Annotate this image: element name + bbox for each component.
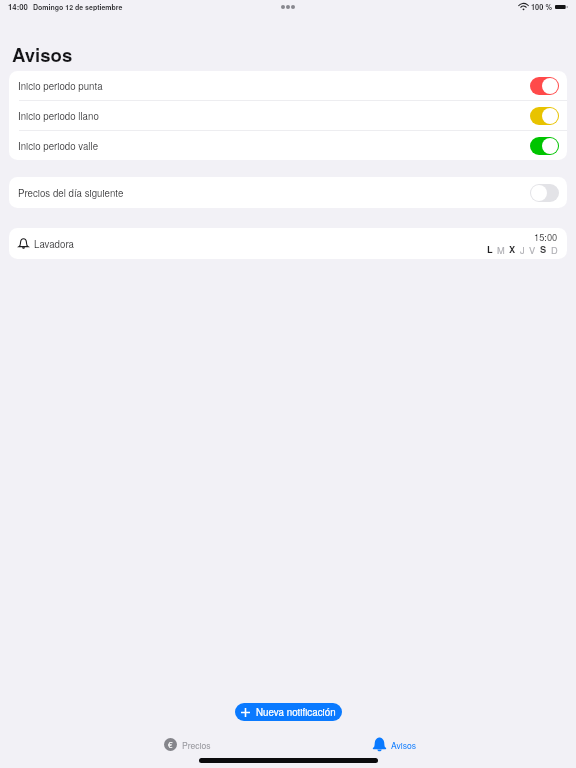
button[interactable]: Nueva notificación [235,703,342,721]
staticText: 15:00 [534,230,558,243]
staticText: L [487,243,493,256]
staticText: Inicio periodo punta [18,79,103,93]
button[interactable]: Precios del día siguiente [9,177,567,208]
staticText: Nueva notificación [256,705,336,719]
staticText: Domingo 12 de septiembre [33,2,123,12]
staticText: € [168,739,173,750]
staticText: Precios del día siguiente [18,186,124,200]
staticText: Avisos [391,739,417,751]
staticText: Precios [182,739,211,751]
button[interactable]: Lavadora [9,228,567,259]
button[interactable]: Inicio periodo llano [9,101,567,130]
button[interactable]: Inicio periodo punta [9,71,567,100]
staticText: Avisos [12,41,73,68]
staticText: M [497,243,505,256]
staticText: Inicio periodo valle [18,139,99,153]
staticText: S [540,243,547,256]
staticText: V [529,243,536,256]
button[interactable]: Activado [530,107,559,125]
staticText: X [509,243,516,256]
staticText: D [551,243,558,256]
button[interactable]: Avisos [370,735,420,754]
button[interactable]: Desactivado [530,184,559,202]
button[interactable]: Activado [530,77,559,95]
button[interactable]: € [161,736,214,753]
staticText: J [520,243,525,256]
staticText: 14:00 [8,1,28,12]
staticText: Lavadora [34,237,74,251]
staticText: Inicio periodo llano [18,109,99,123]
button[interactable]: Inicio periodo valle [9,131,567,160]
button[interactable]: Activado [530,137,559,155]
staticText: 100 % [531,2,552,13]
